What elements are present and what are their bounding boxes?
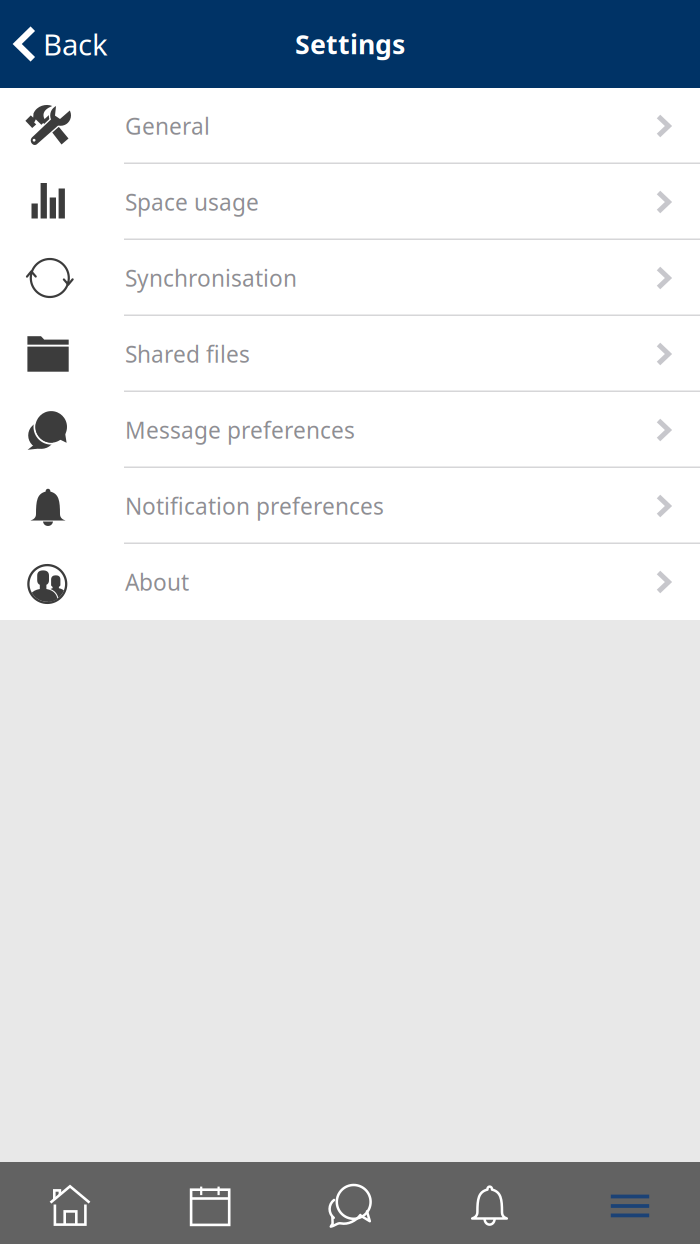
button[interactable]: About: [0, 544, 700, 620]
staticText: General: [125, 111, 210, 141]
staticText: Back: [43, 24, 108, 63]
staticText: About: [125, 567, 189, 597]
staticText: Shared files: [125, 339, 250, 369]
button[interactable]: General: [0, 88, 700, 164]
button[interactable]: Calendar: [140, 1162, 280, 1244]
staticText: Message preferences: [125, 415, 355, 445]
staticText: Notification preferences: [125, 491, 384, 521]
staticText: Synchronisation: [125, 263, 297, 293]
button[interactable]: Space usage: [0, 164, 700, 240]
button[interactable]: Shared files: [0, 316, 700, 392]
staticText: Space usage: [125, 187, 259, 217]
button[interactable]: Menu: [560, 1162, 700, 1244]
button[interactable]: Notifications: [420, 1162, 560, 1244]
button[interactable]: Home: [0, 1162, 140, 1244]
button[interactable]: Messages: [280, 1162, 420, 1244]
button[interactable]: Back: [0, 10, 108, 77]
staticText: Settings: [295, 26, 405, 62]
button[interactable]: Synchronisation: [0, 240, 700, 316]
button[interactable]: Notification preferences: [0, 468, 700, 544]
button[interactable]: Message preferences: [0, 392, 700, 468]
